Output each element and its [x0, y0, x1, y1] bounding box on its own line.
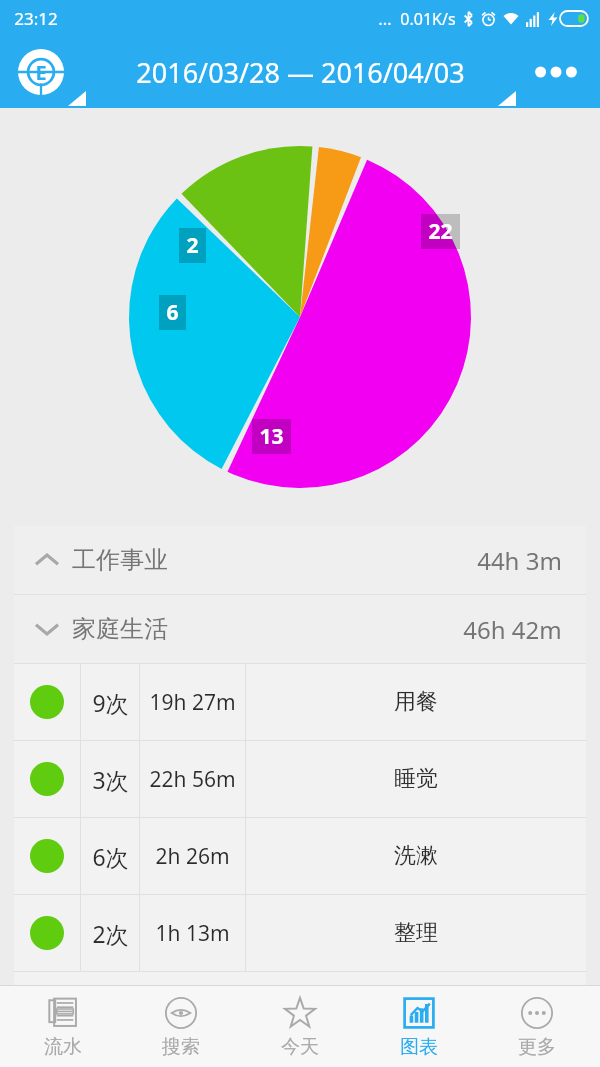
- staticText: 6: [166, 298, 179, 327]
- staticText: 22: [428, 217, 453, 246]
- staticText: 2h 26m: [155, 842, 230, 871]
- button[interactable]: 搜索: [125, 986, 237, 1067]
- staticText: 2次: [92, 918, 129, 949]
- staticText: 洗漱: [394, 842, 438, 870]
- staticText: 19h 27m: [149, 688, 236, 717]
- button[interactable]: App logo: [18, 49, 64, 95]
- staticText: 6次: [92, 841, 129, 872]
- staticText: 1h 13m: [155, 919, 230, 948]
- staticText: 23:12: [14, 7, 58, 30]
- button[interactable]: 家庭生活: [14, 595, 586, 663]
- staticText: 0.01K/s: [400, 8, 456, 30]
- button[interactable]: 2次: [14, 895, 586, 971]
- staticText: 46h 42m: [463, 613, 562, 646]
- button[interactable]: More options: [528, 44, 584, 100]
- staticText: E: [35, 59, 47, 86]
- button[interactable]: 图表: [363, 986, 475, 1067]
- staticText: 工作事业: [72, 545, 168, 575]
- staticText: 整理: [394, 919, 438, 947]
- staticText: 今天: [281, 1035, 319, 1059]
- staticText: 图表: [400, 1035, 438, 1059]
- staticText: 2: [186, 231, 199, 260]
- staticText: 流水: [44, 1035, 82, 1059]
- staticText: 44h 3m: [477, 544, 562, 577]
- staticText: 9次: [92, 687, 129, 718]
- staticText: 搜索: [162, 1035, 200, 1059]
- staticText: 3次: [92, 764, 129, 795]
- button[interactable]: 更多: [481, 986, 593, 1067]
- staticText: 13: [259, 422, 284, 451]
- staticText: 更多: [518, 1035, 556, 1059]
- button[interactable]: 今天: [244, 986, 356, 1067]
- button[interactable]: 6次: [14, 818, 586, 894]
- button[interactable]: 工作事业: [14, 526, 586, 594]
- staticText: …: [378, 7, 392, 30]
- button[interactable]: 3次: [14, 741, 586, 817]
- staticText: 22h 56m: [149, 765, 236, 794]
- button[interactable]: 流水: [7, 986, 119, 1067]
- staticText: 睡觉: [394, 765, 438, 793]
- staticText: 2016/03/28 — 2016/04/03: [136, 54, 465, 91]
- staticText: 用餐: [394, 688, 438, 716]
- button[interactable]: 9次: [14, 664, 586, 740]
- staticText: 家庭生活: [72, 614, 168, 644]
